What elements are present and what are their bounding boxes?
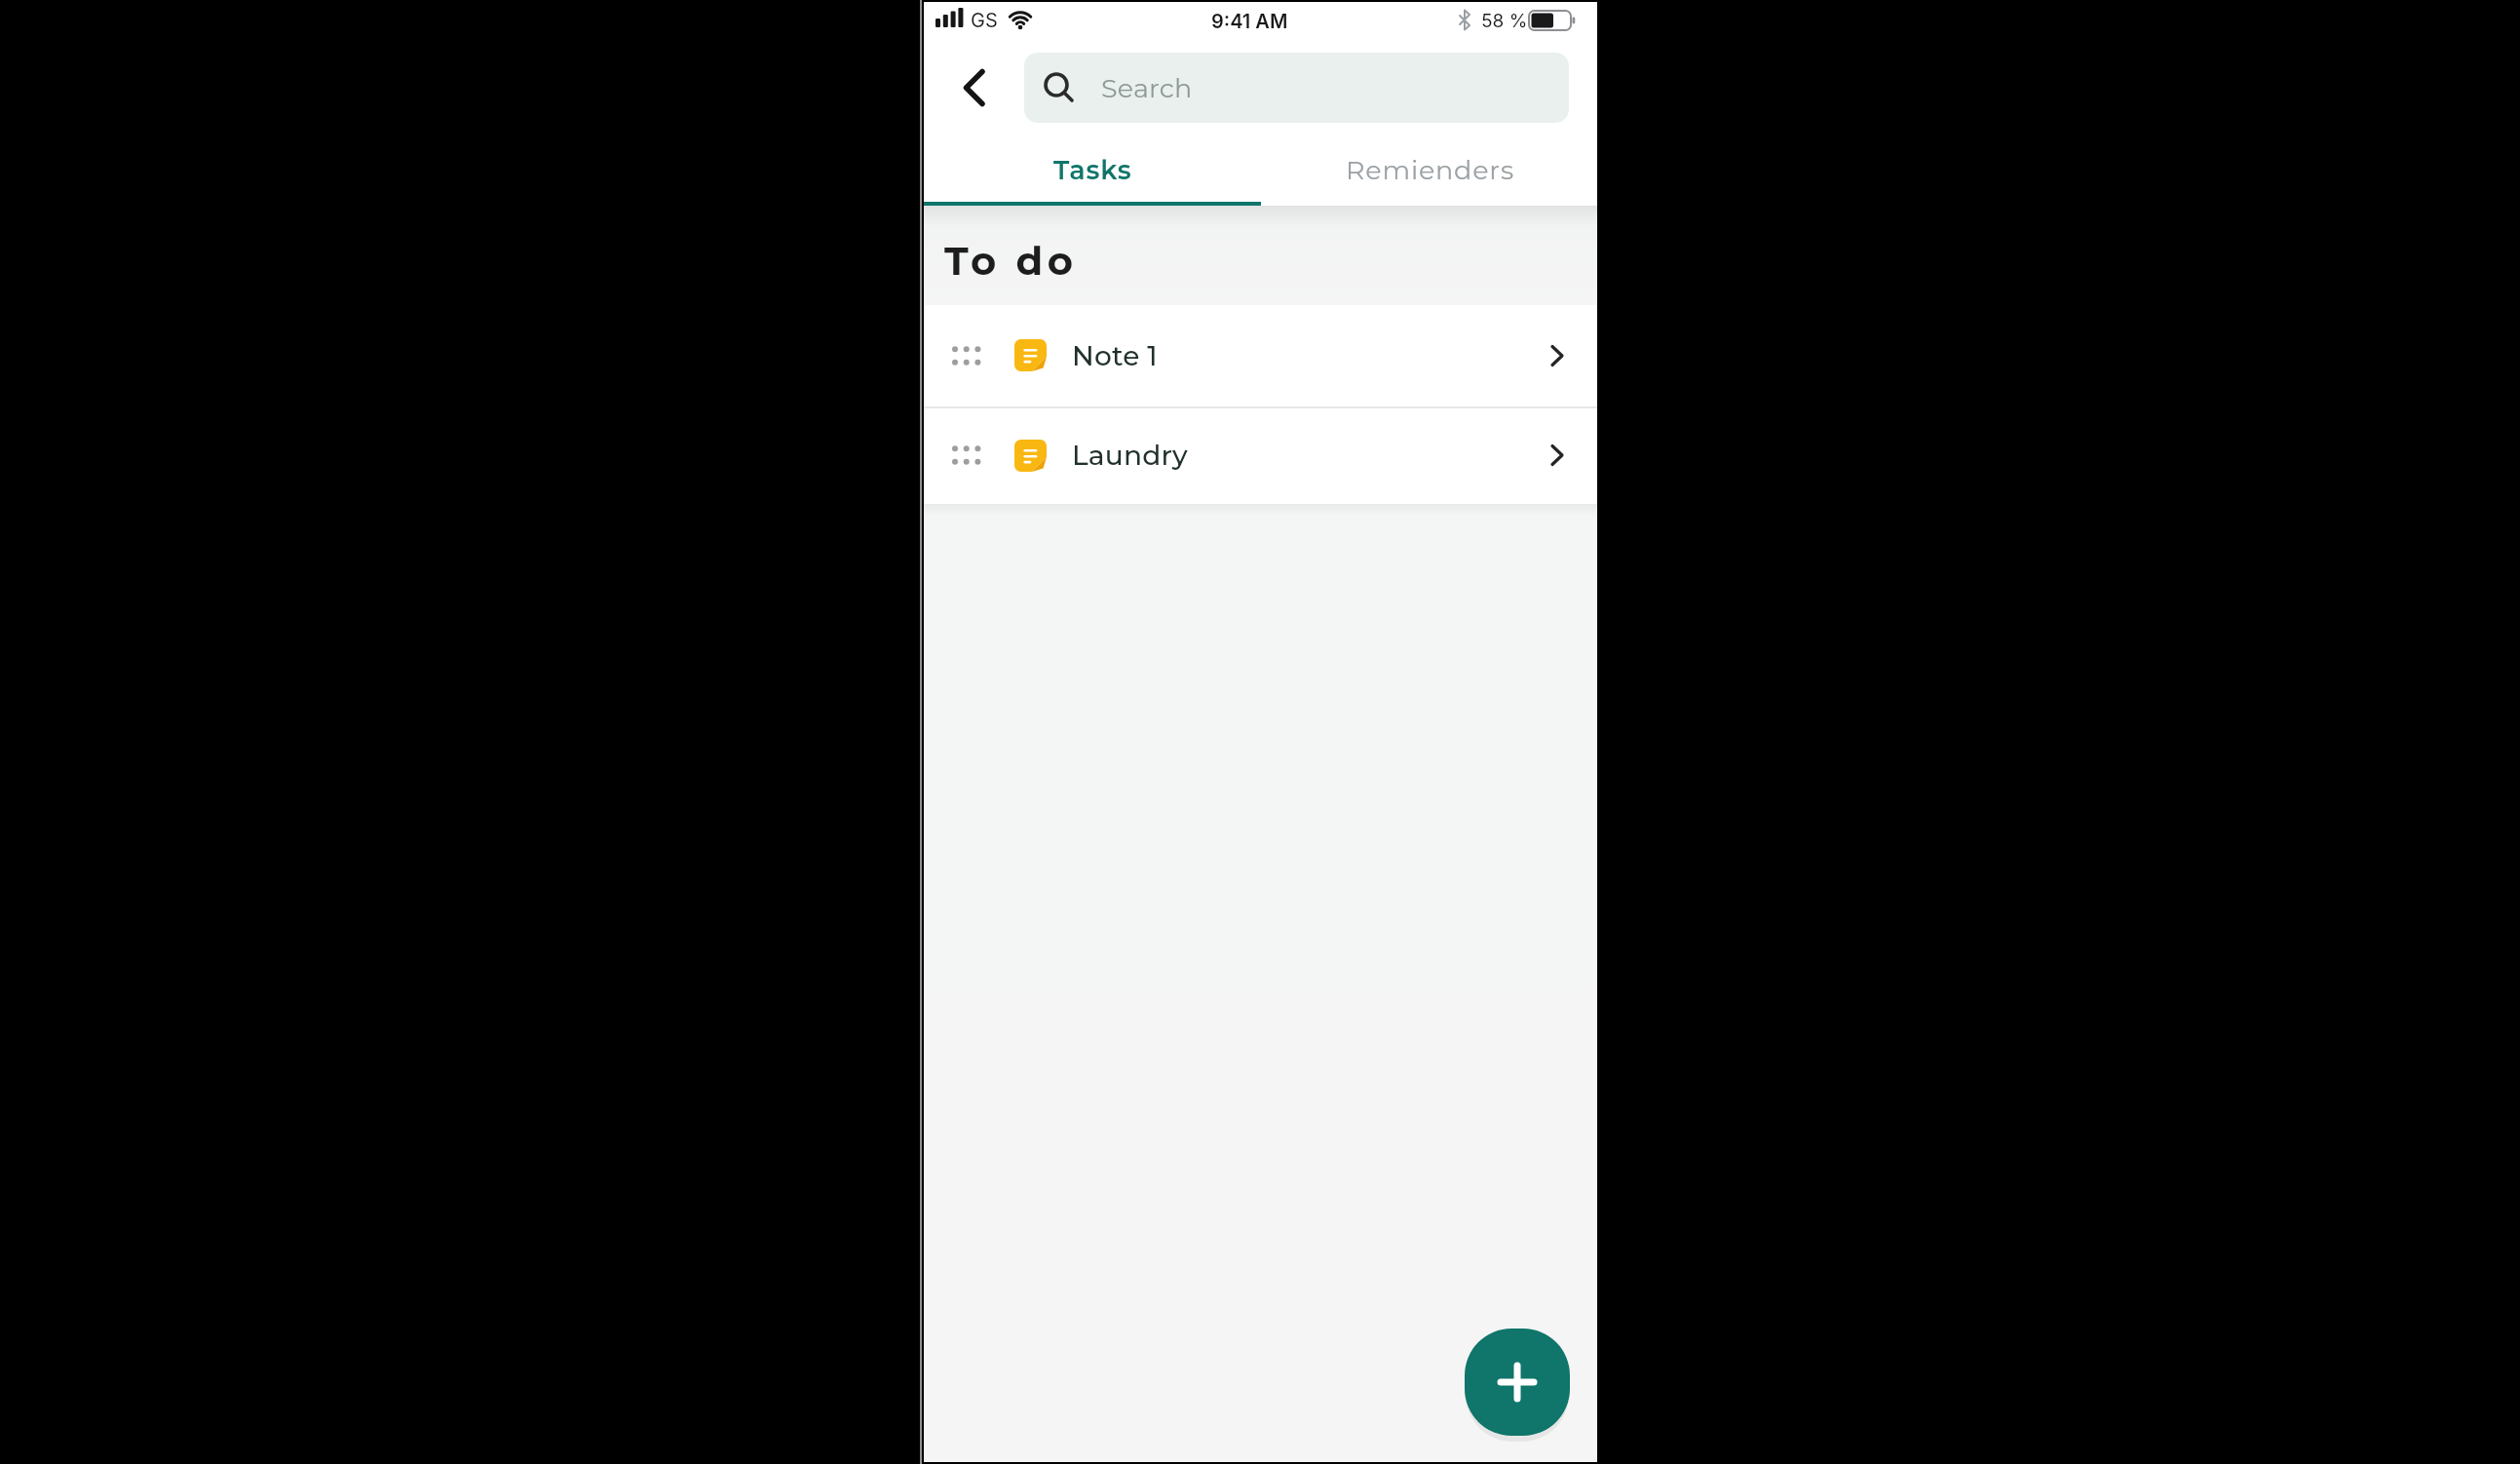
staticText: To do [944, 237, 1078, 285]
button[interactable] [924, 305, 1597, 406]
staticText: 58 % [1481, 10, 1528, 32]
button[interactable]: Remienders [1261, 135, 1598, 205]
button[interactable]: Tasks [924, 135, 1261, 205]
button[interactable]: Search [1024, 53, 1569, 123]
staticText: Search [1101, 72, 1193, 104]
staticText: Laundry [1072, 439, 1188, 472]
button[interactable] [924, 408, 1597, 504]
button[interactable] [1465, 1329, 1570, 1436]
staticText: Remienders [1346, 154, 1514, 186]
staticText: 9:41 AM [1211, 10, 1288, 33]
staticText: Tasks [1053, 154, 1132, 186]
button[interactable] [953, 66, 996, 109]
staticText: GS [971, 9, 998, 32]
staticText: Note 1 [1072, 339, 1158, 372]
